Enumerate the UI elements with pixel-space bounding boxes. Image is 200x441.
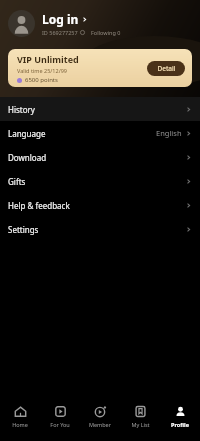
staticText: Detail — [157, 64, 176, 73]
staticText: Settings — [8, 224, 39, 235]
button[interactable]: Log in — [8, 0, 192, 46]
staticText: Valid time 25/12/99 — [17, 67, 67, 74]
button[interactable]: Detail — [147, 61, 185, 76]
staticText: English — [156, 128, 182, 138]
staticText: History — [8, 104, 35, 115]
button[interactable]: Home — [0, 393, 40, 439]
button[interactable]: For You — [40, 393, 80, 439]
staticText: Following 0 — [91, 29, 121, 36]
staticText: Log in — [42, 11, 79, 27]
staticText: Home — [12, 421, 28, 428]
button[interactable]: Help & feedback — [0, 193, 200, 217]
staticText: Member — [89, 421, 111, 428]
staticText: Gifts — [8, 176, 26, 187]
staticText: ID 569277257 — [42, 29, 78, 36]
button[interactable]: Profile — [160, 393, 200, 439]
staticText: Profile — [171, 421, 189, 428]
staticText: 6500 points — [25, 76, 58, 84]
button[interactable]: Language — [0, 121, 200, 145]
button[interactable]: VIP Unlimited — [8, 49, 192, 87]
button[interactable]: History — [0, 97, 200, 121]
staticText: Help & feedback — [8, 200, 70, 211]
staticText: Language — [8, 128, 46, 139]
button[interactable]: Member — [80, 393, 120, 439]
button[interactable]: Settings — [0, 217, 200, 241]
staticText: For You — [50, 421, 70, 428]
staticText: Download — [8, 152, 47, 163]
button[interactable]: Download — [0, 145, 200, 169]
staticText: VIP Unlimited — [17, 53, 79, 65]
button[interactable]: Gifts — [0, 169, 200, 193]
staticText: My List — [131, 421, 150, 428]
button[interactable]: My List — [120, 393, 160, 439]
